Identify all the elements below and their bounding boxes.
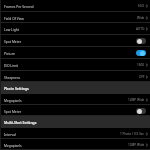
staticText: AUTO [136, 27, 145, 31]
staticText: Spot Meter [4, 109, 22, 113]
staticText: OFF [139, 75, 145, 79]
button[interactable]: Picture on [136, 50, 146, 56]
button[interactable]: Field Of View [0, 12, 150, 23]
staticText: 1 Photo / 0.5 Sec [120, 132, 145, 136]
button[interactable]: Low Light [0, 23, 150, 35]
staticText: Picture [4, 51, 15, 55]
staticText: Multi-Shot Settings [4, 120, 37, 125]
staticText: Spot Meter [4, 39, 22, 43]
button[interactable]: Spot Meter off [136, 38, 146, 44]
staticText: Wide [137, 16, 145, 20]
staticText: Low Light [4, 27, 19, 31]
staticText: Megapixels [4, 143, 22, 147]
staticText: 12MP Wide [128, 98, 145, 102]
staticText: Sharpness [4, 75, 21, 79]
staticText: 12MP Wide [128, 143, 145, 147]
button[interactable]: Sharpness [0, 71, 150, 82]
button[interactable]: Megapixels [0, 139, 150, 150]
staticText: Field Of View [4, 16, 24, 20]
staticText: Megapixels [4, 98, 22, 102]
staticText: Photo Settings [4, 86, 29, 91]
staticText: 60.0 [138, 4, 145, 8]
button[interactable]: Frames Per Second [0, 0, 150, 12]
staticText: 1600 [137, 63, 145, 67]
staticText: ISO Limit [4, 63, 19, 67]
staticText: Frames Per Second [4, 4, 34, 8]
button[interactable]: Picture [0, 47, 150, 59]
button[interactable]: Spot Meter off [136, 108, 146, 114]
button[interactable]: Spot Meter [0, 35, 150, 47]
button[interactable]: Spot Meter [0, 105, 150, 116]
staticText: Interval [4, 132, 16, 136]
button[interactable]: Interval [0, 128, 150, 139]
button[interactable]: Megapixels [0, 94, 150, 105]
button[interactable]: ISO Limit [0, 59, 150, 71]
